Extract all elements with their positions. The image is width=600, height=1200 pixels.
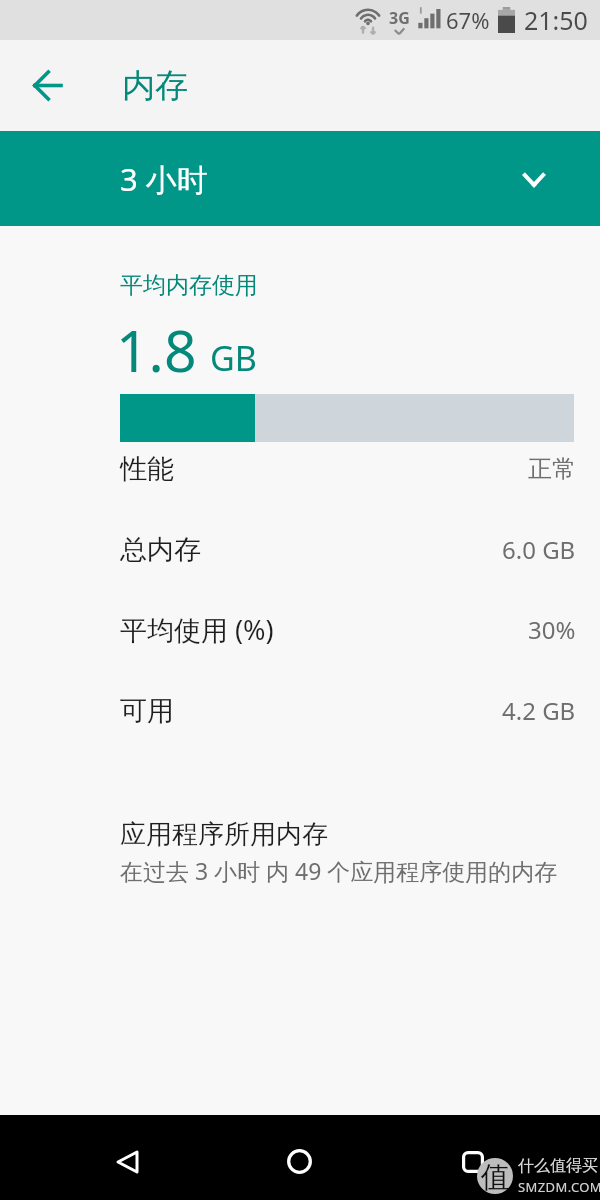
- button[interactable]: 可用: [120, 670, 576, 751]
- staticText: 6.0 GB: [502, 533, 576, 566]
- staticText: 1.8: [116, 311, 197, 389]
- button[interactable]: 总内存: [120, 509, 576, 590]
- staticText: 值: [479, 1159, 511, 1196]
- staticText: 平均使用 (%): [120, 611, 274, 648]
- button[interactable]: Back: [100, 1134, 155, 1189]
- staticText: SMZDM.COM: [518, 1178, 600, 1196]
- button[interactable]: 性能: [120, 428, 576, 509]
- staticText: GB: [210, 335, 257, 381]
- staticText: 平均内存使用: [120, 271, 258, 300]
- staticText: 性能: [120, 452, 174, 486]
- staticText: 可用: [120, 694, 174, 728]
- staticText: 正常: [528, 454, 576, 484]
- button[interactable]: Home: [272, 1134, 327, 1189]
- button[interactable]: 平均使用 (%): [120, 589, 576, 670]
- staticText: 30%: [528, 613, 576, 646]
- staticText: 4.2 GB: [502, 694, 576, 727]
- staticText: 3G: [389, 7, 410, 29]
- button[interactable]: Back: [19, 58, 74, 113]
- staticText: 什么值得买: [518, 1156, 598, 1176]
- staticText: 在过去 3 小时 内 49 个应用程序使用的内存: [120, 855, 558, 886]
- staticText: 总内存: [120, 533, 201, 567]
- staticText: 3 小时: [120, 158, 208, 200]
- button[interactable]: Recents: [445, 1134, 500, 1189]
- staticText: 67%: [446, 5, 490, 35]
- staticText: 21:50: [524, 3, 588, 37]
- button[interactable]: 3 小时: [0, 131, 600, 226]
- staticText: 内存: [122, 65, 188, 107]
- staticText: 应用程序所用内存: [120, 818, 328, 851]
